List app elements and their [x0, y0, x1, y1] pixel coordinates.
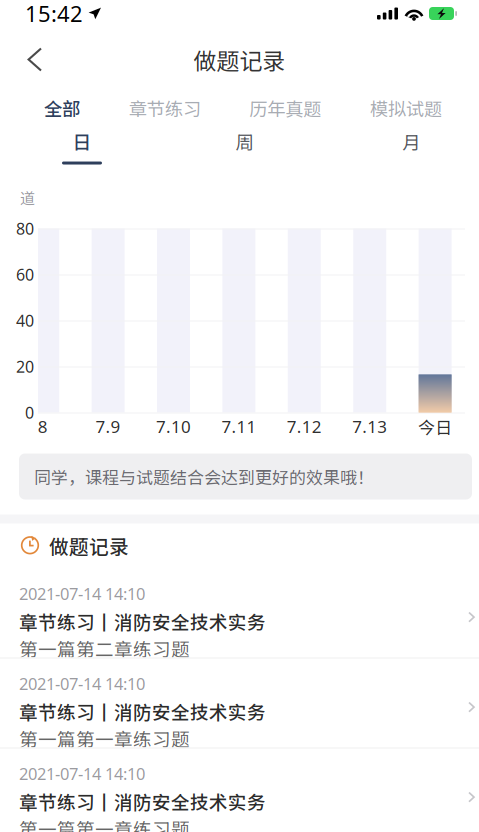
button[interactable]: 历年真题 [249, 86, 321, 129]
staticText: 日 [72, 128, 91, 155]
staticText: 7.9 [96, 415, 121, 438]
staticText: 周 [235, 128, 254, 155]
staticText: 月 [402, 128, 421, 155]
button[interactable]: 2021-07-14 14:10 [0, 747, 479, 832]
staticText: 20 [16, 356, 34, 377]
staticText: 做题记录 [49, 531, 129, 560]
staticText: 80 [16, 218, 34, 239]
staticText: 章节练习 [129, 95, 201, 121]
staticText: 2021-07-14 14:10 [19, 582, 145, 605]
button[interactable]: 模拟试题 [370, 86, 442, 129]
button[interactable]: 日 [42, 129, 122, 182]
button[interactable]: 全部 [44, 86, 80, 129]
staticText: 7.12 [287, 415, 322, 438]
staticText: 道 [20, 187, 35, 208]
staticText: 15:42 [25, 0, 83, 28]
staticText: 章节练习丨消防安全技术实务 [19, 608, 266, 635]
button[interactable]: 章节练习 [129, 86, 201, 129]
button[interactable]: Back [14, 35, 56, 84]
staticText: 章节练习丨消防安全技术实务 [19, 698, 266, 725]
staticText: 第一篇第一章练习题 [19, 725, 190, 752]
staticText: 历年真题 [249, 95, 321, 121]
staticText: 今日 [418, 414, 452, 439]
staticText: 60 [16, 264, 34, 285]
staticText: 做题记录 [193, 43, 285, 76]
button[interactable]: 月 [372, 129, 452, 182]
staticText: 8 [38, 415, 48, 438]
staticText: 7.13 [352, 415, 387, 438]
button[interactable]: 2021-07-14 14:10 [0, 567, 479, 657]
staticText: 0 [25, 402, 34, 423]
staticText: 40 [16, 310, 34, 331]
staticText: 模拟试题 [370, 95, 442, 121]
staticText: 7.10 [156, 415, 191, 438]
staticText: 7.11 [221, 415, 256, 438]
staticText: 2021-07-14 14:10 [19, 762, 145, 785]
staticText: 2021-07-14 14:10 [19, 672, 145, 695]
staticText: 第一篇第一章练习题 [19, 815, 190, 832]
button[interactable]: 2021-07-14 14:10 [0, 657, 479, 747]
staticText: 第一篇第二章练习题 [19, 635, 190, 662]
button[interactable]: 周 [205, 129, 285, 182]
staticText: 章节练习丨消防安全技术实务 [19, 788, 266, 815]
staticText: 同学，课程与试题结合会达到更好的效果哦！ [34, 464, 374, 489]
staticText: 全部 [44, 95, 80, 121]
